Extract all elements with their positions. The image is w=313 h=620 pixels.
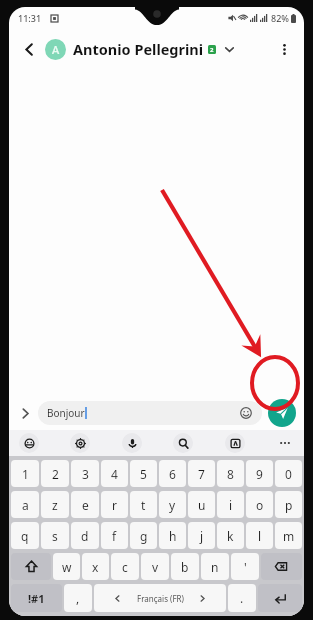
staticText: Français (FR)	[137, 593, 184, 604]
staticText: 9	[256, 466, 263, 482]
staticText: p	[285, 497, 293, 513]
staticText: y	[169, 497, 176, 513]
staticText: Antonio Pellegrini	[73, 39, 204, 59]
button[interactable]: s	[41, 522, 69, 549]
staticText: 6	[169, 466, 176, 482]
button[interactable]: t	[130, 491, 157, 518]
staticText: 11:31	[18, 12, 42, 24]
button[interactable]: Voice input	[122, 433, 142, 453]
button[interactable]: v	[141, 553, 169, 580]
button[interactable]: Bonjour	[38, 401, 262, 425]
staticText: q	[21, 528, 29, 544]
staticText: A	[52, 42, 60, 57]
button[interactable]: p	[275, 491, 302, 518]
button[interactable]: Français (FR)	[94, 584, 226, 612]
staticText: Bonjour	[47, 406, 85, 420]
button[interactable]: 6	[159, 460, 186, 487]
button[interactable]: i	[217, 491, 244, 518]
staticText: a	[22, 497, 29, 513]
staticText: 1	[22, 466, 29, 482]
button[interactable]: More	[276, 434, 294, 452]
staticText: s	[52, 528, 58, 544]
button[interactable]: More options	[272, 37, 296, 61]
staticText: v	[152, 559, 159, 575]
button[interactable]: .	[228, 584, 256, 612]
staticText: n	[211, 559, 219, 575]
staticText: k	[227, 528, 234, 544]
button[interactable]: g	[130, 522, 157, 549]
staticText: 4	[111, 466, 118, 482]
staticText: .	[240, 590, 244, 606]
button[interactable]: '	[231, 553, 259, 580]
button[interactable]: 8	[217, 460, 244, 487]
staticText: ,	[76, 590, 80, 606]
button[interactable]: y	[159, 491, 186, 518]
staticText: 8	[227, 466, 234, 482]
button[interactable]: 0	[275, 460, 302, 487]
button[interactable]: h	[159, 522, 186, 549]
staticText: r	[112, 497, 117, 513]
button[interactable]: r	[101, 491, 128, 518]
button[interactable]: m	[275, 522, 302, 549]
button[interactable]: l	[246, 522, 273, 549]
button[interactable]: e	[71, 491, 99, 518]
button[interactable]: 2	[41, 460, 69, 487]
staticText: 0	[285, 466, 292, 482]
staticText: x	[92, 559, 99, 575]
staticText: e	[82, 497, 89, 513]
button[interactable]: n	[201, 553, 229, 580]
button[interactable]: Stickers	[19, 433, 39, 453]
button[interactable]: w	[53, 553, 80, 580]
staticText: g	[140, 528, 148, 544]
button[interactable]: Backspace	[261, 553, 302, 580]
button[interactable]: 3	[71, 460, 99, 487]
button[interactable]: 1	[11, 460, 39, 487]
button[interactable]: Expand attachments	[15, 403, 35, 423]
button[interactable]: f	[101, 522, 128, 549]
button[interactable]: Back	[17, 37, 41, 61]
button[interactable]: u	[188, 491, 215, 518]
staticText: l	[258, 528, 262, 544]
button[interactable]: c	[111, 553, 139, 580]
button[interactable]: Emoji	[239, 406, 253, 420]
staticText: o	[256, 497, 264, 513]
button[interactable]: !#1	[11, 584, 62, 612]
staticText: m	[283, 528, 295, 544]
staticText: c	[122, 559, 128, 575]
staticText: 82%	[271, 12, 289, 24]
button[interactable]: 7	[188, 460, 215, 487]
staticText: j	[200, 528, 204, 544]
button[interactable]: q	[11, 522, 39, 549]
staticText: 2	[210, 46, 214, 54]
button[interactable]: 9	[246, 460, 273, 487]
button[interactable]: Translate	[225, 433, 245, 453]
staticText: u	[198, 497, 206, 513]
staticText: !#1	[28, 591, 45, 606]
button[interactable]: o	[246, 491, 273, 518]
staticText: w	[62, 559, 72, 575]
button[interactable]: Shift	[11, 553, 51, 580]
button[interactable]: j	[188, 522, 215, 549]
button[interactable]: ,	[64, 584, 92, 612]
button[interactable]: Enter	[258, 584, 302, 612]
staticText: f	[112, 528, 117, 544]
button[interactable]: x	[82, 553, 109, 580]
button[interactable]: 5	[130, 460, 157, 487]
button[interactable]: Search	[173, 433, 193, 453]
button[interactable]: Send	[268, 399, 296, 427]
button[interactable]: Settings	[70, 433, 90, 453]
button[interactable]: 4	[101, 460, 128, 487]
staticText: t	[141, 497, 146, 513]
staticText: z	[52, 497, 58, 513]
button[interactable]: z	[41, 491, 69, 518]
button[interactable]: A	[45, 39, 66, 60]
staticText: 3	[82, 466, 89, 482]
button[interactable]: Expand	[221, 41, 237, 57]
staticText: 7	[198, 466, 205, 482]
staticText: 5	[140, 466, 147, 482]
staticText: d	[81, 528, 89, 544]
button[interactable]: b	[171, 553, 199, 580]
button[interactable]: d	[71, 522, 99, 549]
button[interactable]: a	[11, 491, 39, 518]
button[interactable]: k	[217, 522, 244, 549]
